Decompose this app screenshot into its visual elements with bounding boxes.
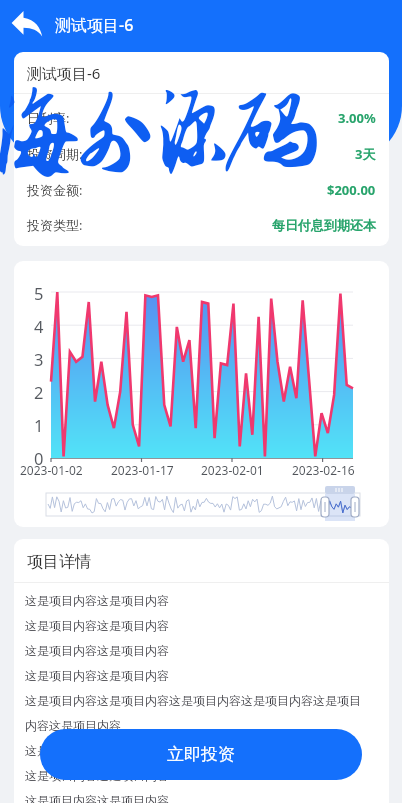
staticText: 2023-01-02 (20, 462, 83, 478)
staticText: 投资周期: (27, 145, 83, 163)
staticText: 这是项目内容这是项目内容 这是项目内容这是项目内容 这是项目内容这是项目内容 这… (25, 587, 367, 803)
button[interactable] (0, 0, 50, 50)
staticText: 投资类型: (27, 216, 83, 234)
staticText: 测试项目-6 (55, 14, 134, 36)
staticText: 3天 (355, 145, 376, 163)
staticText: $200.00 (327, 181, 376, 199)
staticText: 2023-02-16 (292, 462, 355, 478)
staticText: 4 (34, 315, 44, 335)
staticText: 2023-01-17 (111, 462, 174, 478)
staticText: 3.00% (338, 109, 376, 127)
staticText: 项目详情 (27, 552, 91, 572)
staticText: 2 (34, 381, 44, 401)
staticText: 海外源码 (0, 72, 304, 195)
staticText: 日利率: (27, 109, 70, 127)
staticText: 测试项目-6 (27, 63, 101, 83)
staticText: 1 (34, 414, 44, 434)
staticText: 每日付息到期还本 (272, 217, 376, 233)
staticText: 投资金额: (27, 181, 83, 199)
staticText: 5 (34, 282, 44, 302)
staticText: 0 (34, 447, 44, 467)
button[interactable]: 立即投资 (40, 729, 362, 780)
staticText: 立即投资 (167, 744, 235, 765)
staticText: 3 (34, 348, 44, 368)
staticText: 2023-02-01 (201, 462, 264, 478)
